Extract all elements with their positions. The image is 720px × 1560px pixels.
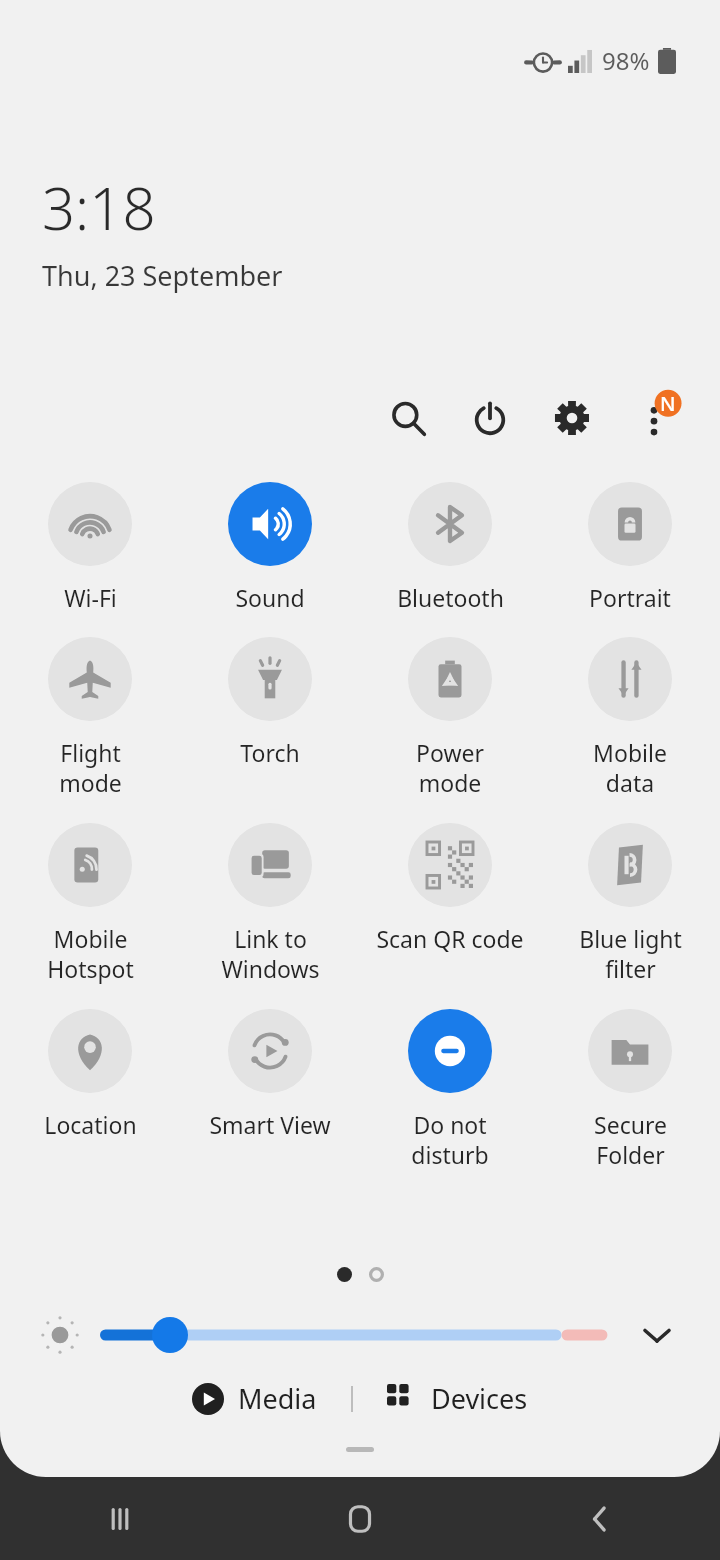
staticText: N [660,390,676,417]
button[interactable]: Torch [180,637,360,768]
staticText: Mobile Hotspot [47,923,134,985]
staticText: Scan QR code [376,923,524,954]
button[interactable]: Wi-Fi [0,482,180,613]
button[interactable]: Secure Folder [540,1009,720,1171]
button[interactable]: Flight mode [0,637,180,799]
staticText: Mobile data [593,737,667,799]
staticText: Power mode [416,737,484,799]
button[interactable]: Location [0,1009,180,1140]
button[interactable]: Brightness [100,1315,610,1355]
button[interactable]: More options [622,386,686,450]
button[interactable]: Search [378,388,438,448]
staticText: Devices [431,1380,528,1417]
button[interactable]: Blue light filter [540,823,720,985]
staticText: Wi-Fi [64,582,117,613]
button[interactable]: Smart View [180,1009,360,1140]
staticText: Flight mode [59,737,122,799]
staticText: Sound [235,582,305,613]
button[interactable]: Bluetooth [360,482,540,613]
button[interactable]: Home [240,1477,480,1560]
button[interactable]: Power off [460,388,520,448]
button[interactable]: Mobile data [540,637,720,799]
staticText: Bluetooth [397,582,504,613]
button[interactable]: Power mode [360,637,540,799]
button[interactable]: Recents [0,1477,240,1560]
button[interactable]: Link to Windows [180,823,360,985]
button[interactable]: Expand [634,1312,680,1358]
staticText: Location [44,1109,137,1140]
staticText: Secure Folder [594,1109,667,1171]
button[interactable]: Mobile Hotspot [0,823,180,985]
staticText: Blue light filter [579,923,682,985]
button[interactable]: Devices [377,1372,538,1425]
staticText: Torch [240,737,300,768]
button[interactable]: Settings [542,388,602,448]
button[interactable]: Portrait [540,482,720,613]
staticText: Link to Windows [221,923,320,985]
button[interactable]: Do not disturb [360,1009,540,1171]
button[interactable]: Sound [180,482,360,613]
staticText: Do not disturb [411,1109,489,1171]
button[interactable]: Scan QR code [360,823,540,954]
button[interactable]: Back [480,1477,720,1560]
staticText: 3:18 [42,168,156,247]
button[interactable]: Media [182,1372,327,1425]
staticText: Thu, 23 September [42,257,283,294]
staticText: Portrait [589,582,671,613]
staticText: 98% [602,44,650,77]
staticText: Smart View [209,1109,331,1140]
staticText: Media [238,1380,317,1417]
